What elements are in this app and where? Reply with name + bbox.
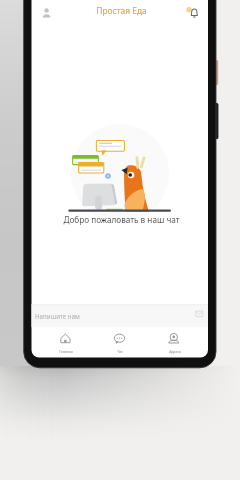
- button[interactable]: Чат: [93, 330, 146, 356]
- button[interactable]: Профиль: [38, 2, 56, 22]
- staticText: Чат: [117, 349, 123, 354]
- button[interactable]: Адреса: [148, 330, 201, 356]
- staticText: Напишите нам: [35, 312, 80, 320]
- button[interactable]: Уведомления: [185, 2, 203, 22]
- staticText: Добро пожаловать в наш чат: [33, 214, 210, 225]
- button[interactable]: Написать сообщение: [32, 305, 209, 327]
- staticText: Простая Еда: [33, 5, 210, 16]
- staticText: Главная: [59, 349, 73, 354]
- button[interactable]: Главная: [39, 330, 92, 356]
- staticText: Адреса: [169, 349, 181, 354]
